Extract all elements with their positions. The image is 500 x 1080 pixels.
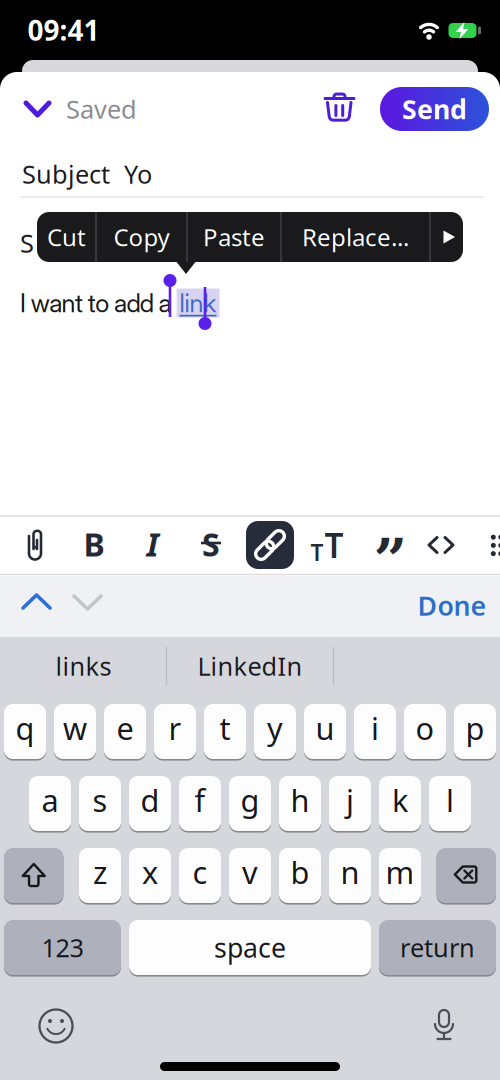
- staticText: q: [15, 708, 34, 748]
- staticText: T: [310, 537, 323, 567]
- staticText: a: [41, 780, 58, 820]
- staticText: h: [290, 780, 309, 820]
- staticText: w: [63, 708, 87, 748]
- button[interactable]: Insert link: [246, 521, 294, 569]
- staticText: links: [55, 649, 111, 683]
- button[interactable]: v: [229, 847, 271, 904]
- button[interactable]: u: [304, 703, 346, 760]
- staticText: Saved: [66, 92, 137, 126]
- button[interactable]: Send: [380, 87, 489, 131]
- staticText: Yo: [124, 157, 152, 191]
- button[interactable]: Cut: [37, 212, 96, 262]
- button[interactable]: LinkedIn: [170, 638, 330, 694]
- button[interactable]: j: [329, 775, 371, 832]
- button[interactable]: r: [154, 703, 196, 760]
- button[interactable]: Delete: [436, 847, 496, 904]
- button[interactable]: Code: [417, 521, 465, 569]
- staticText: n: [340, 852, 359, 892]
- button[interactable]: b: [279, 847, 321, 904]
- button[interactable]: More formatting options: [482, 521, 500, 569]
- staticText: Subject: [22, 157, 110, 191]
- staticText: y: [267, 708, 283, 748]
- button[interactable]: Emoji: [34, 1004, 78, 1048]
- button[interactable]: o: [404, 703, 446, 760]
- staticText: f: [194, 780, 205, 820]
- button[interactable]: i: [354, 703, 396, 760]
- button[interactable]: g: [229, 775, 271, 832]
- button[interactable]: d: [129, 775, 171, 832]
- button[interactable]: Done: [407, 587, 497, 623]
- button[interactable]: s: [79, 775, 121, 832]
- staticText: B: [83, 523, 104, 565]
- staticText: ”: [373, 524, 407, 593]
- staticText: Replace...: [302, 221, 409, 253]
- staticText: Copy: [113, 221, 169, 253]
- button[interactable]: x: [129, 847, 171, 904]
- staticText: k: [392, 780, 408, 820]
- staticText: i: [371, 708, 379, 748]
- staticText: Done: [417, 588, 486, 623]
- button[interactable]: z: [79, 847, 121, 904]
- staticText: e: [116, 708, 133, 748]
- staticText: T: [324, 523, 343, 567]
- staticText: Send: [402, 91, 467, 127]
- button[interactable]: Text size: [303, 521, 351, 569]
- button[interactable]: Previous field: [14, 583, 58, 619]
- button[interactable]: Dictation: [422, 1004, 466, 1048]
- button[interactable]: a: [29, 775, 71, 832]
- staticText: return: [400, 931, 475, 964]
- staticText: x: [142, 852, 158, 892]
- button[interactable]: y: [254, 703, 296, 760]
- button[interactable]: Shift: [4, 847, 63, 904]
- button[interactable]: Quote: [366, 535, 414, 583]
- staticText: 09:41: [27, 11, 99, 49]
- staticText: link: [180, 288, 217, 318]
- staticText: u: [315, 708, 334, 748]
- button[interactable]: w: [54, 703, 96, 760]
- staticText: S: [202, 523, 220, 565]
- staticText: b: [290, 852, 309, 892]
- staticText: Cut: [47, 221, 86, 253]
- button[interactable]: t: [204, 703, 246, 760]
- button[interactable]: return: [379, 919, 496, 976]
- button[interactable]: Next field: [65, 584, 109, 620]
- button[interactable]: Delete draft: [317, 86, 361, 130]
- button[interactable]: Replace...: [281, 212, 430, 262]
- button[interactable]: e: [104, 703, 146, 760]
- button[interactable]: h: [279, 775, 321, 832]
- button[interactable]: q: [4, 703, 46, 760]
- staticText: d: [140, 780, 159, 820]
- button[interactable]: c: [179, 847, 221, 904]
- button[interactable]: k: [379, 775, 421, 832]
- button[interactable]: Paste: [187, 212, 281, 262]
- button[interactable]: m: [379, 847, 421, 904]
- button[interactable]: Dismiss: [15, 87, 59, 131]
- staticText: space: [214, 930, 286, 965]
- staticText: s: [92, 780, 107, 820]
- button[interactable]: 123: [4, 919, 121, 976]
- staticText: I: [146, 523, 158, 565]
- button[interactable]: f: [179, 775, 221, 832]
- button[interactable]: l: [429, 775, 471, 832]
- staticText: g: [240, 780, 259, 820]
- staticText: t: [219, 708, 230, 748]
- button[interactable]: p: [454, 703, 496, 760]
- button[interactable]: Strikethrough: [187, 520, 235, 568]
- staticText: z: [93, 852, 107, 892]
- button[interactable]: space: [129, 919, 371, 976]
- staticText: m: [385, 852, 414, 892]
- button[interactable]: Copy: [96, 212, 187, 262]
- button[interactable]: More actions: [430, 212, 463, 262]
- button[interactable]: Attach file: [11, 521, 59, 569]
- button[interactable]: links: [3, 638, 163, 694]
- staticText: l: [446, 780, 454, 820]
- staticText: LinkedIn: [197, 649, 302, 683]
- staticText: p: [465, 708, 484, 748]
- staticText: r: [168, 708, 181, 748]
- staticText: S: [20, 226, 34, 260]
- staticText: o: [415, 708, 434, 748]
- button[interactable]: n: [329, 847, 371, 904]
- button[interactable]: Bold: [70, 520, 118, 568]
- staticText: 123: [41, 931, 83, 964]
- button[interactable]: Italic: [128, 520, 176, 568]
